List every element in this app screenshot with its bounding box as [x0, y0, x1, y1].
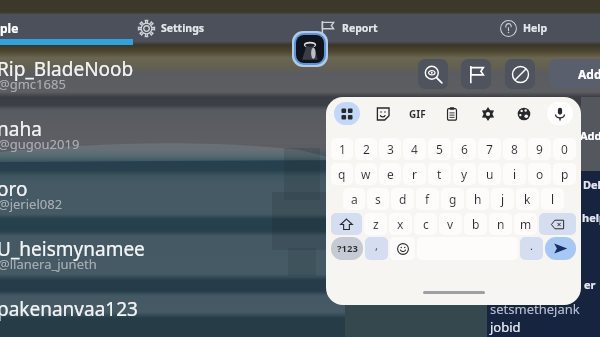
button[interactable]: o [528, 163, 551, 185]
staticText: 0 [561, 141, 568, 157]
button[interactable]: Apps [334, 102, 360, 125]
button[interactable]: Inspect avatar [418, 59, 448, 89]
button[interactable]: Player avatar [296, 35, 324, 63]
button[interactable]: h [466, 188, 489, 210]
button[interactable]: a [343, 188, 365, 210]
button[interactable]: Help [500, 14, 556, 42]
button[interactable]: Shift [331, 213, 362, 235]
staticText: j [501, 191, 505, 207]
button[interactable]: , [365, 237, 388, 260]
staticText: U_heismynamee [0, 236, 145, 262]
staticText: h [474, 191, 482, 207]
staticText: f [425, 191, 430, 207]
button[interactable]: 9 [528, 138, 551, 160]
button[interactable]: n [489, 213, 512, 235]
button[interactable]: j [491, 188, 514, 210]
button[interactable]: Voice input [547, 102, 573, 125]
staticText: er [584, 277, 596, 292]
staticText: oro [0, 176, 28, 202]
button[interactable]: u [478, 163, 501, 185]
button[interactable]: 7 [478, 138, 501, 160]
button[interactable]: 1 [331, 138, 353, 160]
button[interactable]: z [364, 213, 387, 235]
staticText: @gugou2019 [0, 135, 80, 153]
staticText: ?123 [337, 242, 358, 255]
button[interactable]: v [439, 213, 462, 235]
button[interactable]: p [553, 163, 576, 185]
button[interactable]: Keyboard settings [475, 102, 501, 125]
staticText: Report [342, 21, 378, 35]
staticText: k [524, 191, 531, 207]
button[interactable]: c [414, 213, 437, 235]
staticText: 9 [536, 141, 543, 157]
staticText: 7 [486, 141, 493, 157]
staticText: . [530, 238, 533, 253]
button[interactable]: Block player [505, 59, 535, 89]
button[interactable]: U_heismynamee [0, 226, 600, 276]
staticText: e [387, 166, 394, 182]
staticText: 6 [461, 141, 468, 157]
button[interactable]: f [416, 188, 439, 210]
button[interactable]: g [441, 188, 464, 210]
button[interactable]: ?123 [331, 237, 363, 260]
button[interactable]: Send [545, 237, 576, 260]
staticText: Delt [583, 177, 600, 192]
button[interactable]: i [503, 163, 526, 185]
staticText: Rip_BladeNoob [0, 56, 134, 82]
button[interactable]: w [355, 163, 377, 185]
staticText: p [561, 166, 569, 182]
button[interactable]: k [516, 188, 539, 210]
staticText: b [472, 216, 480, 232]
button[interactable]: s [367, 188, 389, 210]
button[interactable]: naha [0, 106, 600, 156]
button[interactable]: Report [319, 14, 385, 42]
staticText: 2 [363, 141, 370, 157]
staticText: z [373, 216, 379, 232]
button[interactable]: Rip_BladeNoob [0, 46, 600, 96]
button[interactable]: 3 [379, 138, 401, 160]
button[interactable]: Report player [461, 59, 491, 89]
staticText: d [399, 191, 407, 207]
button[interactable]: GIF [406, 102, 429, 125]
staticText: pakenanvaa123 [0, 296, 138, 322]
button[interactable]: ple [0, 14, 132, 42]
button[interactable]: pakenanvaa123 [0, 286, 600, 336]
button[interactable]: l [541, 188, 564, 210]
button[interactable]: d [391, 188, 414, 210]
button[interactable]: 6 [453, 138, 476, 160]
button[interactable]: Stickers [370, 102, 396, 125]
button[interactable]: 8 [503, 138, 526, 160]
button[interactable]: Settings [138, 14, 214, 42]
button[interactable]: Clipboard [439, 102, 465, 125]
staticText: @jeriel082 [0, 195, 63, 213]
button[interactable]: r [403, 163, 426, 185]
staticText: i [513, 166, 517, 182]
staticText: m [520, 216, 532, 232]
button[interactable]: oro [0, 166, 600, 216]
staticText: a [351, 191, 358, 207]
button[interactable]: Themes [511, 102, 537, 125]
button[interactable]: m [514, 213, 537, 235]
button[interactable]: 4 [403, 138, 426, 160]
button[interactable]: b [464, 213, 487, 235]
button[interactable]: e [379, 163, 401, 185]
button[interactable]: Backspace [539, 213, 576, 235]
button[interactable]: 2 [355, 138, 377, 160]
button[interactable]: 5 [428, 138, 451, 160]
button[interactable]: t [428, 163, 451, 185]
button[interactable]: y [453, 163, 476, 185]
staticText: y [461, 166, 468, 182]
staticText: s [375, 191, 381, 207]
staticText: 8 [511, 141, 518, 157]
button[interactable]: 0 [553, 138, 576, 160]
button[interactable]: x [389, 213, 412, 235]
button[interactable]: q [331, 163, 353, 185]
button[interactable]: Add Friend [549, 59, 600, 88]
button[interactable]: Emoji [390, 237, 415, 260]
staticText: v [447, 216, 454, 232]
staticText: 1 [339, 141, 346, 157]
staticText: jobid [490, 318, 521, 336]
button[interactable]: . [520, 237, 543, 260]
